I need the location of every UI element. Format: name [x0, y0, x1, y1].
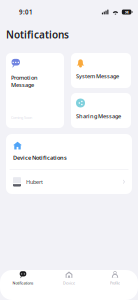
staticText: Device Notifications [13, 154, 67, 161]
staticText: Device [63, 281, 75, 285]
button[interactable]: System Message [71, 53, 131, 88]
staticText: Coming Soon [11, 115, 32, 120]
button[interactable]: Promotion Message [6, 53, 64, 128]
button[interactable]: Hubert [6, 170, 132, 194]
button[interactable]: Device [46, 263, 92, 293]
staticText: 9:01 [19, 8, 33, 16]
staticText: Sharing Message [76, 112, 121, 120]
staticText: Notifications [12, 281, 33, 285]
staticText: Profile [110, 281, 120, 285]
staticText: System Message [76, 72, 119, 80]
button[interactable]: Notifications [0, 263, 46, 293]
button[interactable]: Profile [92, 263, 138, 293]
staticText: Promotion Message [11, 74, 38, 88]
staticText: Notifications [6, 28, 69, 41]
button[interactable]: Sharing Message [71, 93, 131, 128]
staticText: Hubert [26, 178, 43, 185]
staticText: 94 [125, 9, 129, 14]
